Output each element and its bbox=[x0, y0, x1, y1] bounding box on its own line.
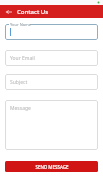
button[interactable]: Message bbox=[5, 100, 98, 150]
staticText: Contact Us bbox=[17, 8, 49, 16]
button[interactable]: Subject bbox=[5, 74, 98, 90]
staticText: Your Name bbox=[10, 22, 31, 27]
staticText: Your Email bbox=[10, 55, 35, 62]
button[interactable]: Your Name bbox=[5, 24, 98, 40]
staticText: Message bbox=[10, 105, 31, 112]
staticText: Subject bbox=[10, 79, 28, 86]
button[interactable]: Your Email bbox=[5, 50, 98, 66]
button[interactable]: SEND MESSAGE bbox=[5, 161, 98, 172]
button[interactable]: Back bbox=[4, 7, 13, 16]
staticText: SEND MESSAGE bbox=[35, 164, 69, 170]
